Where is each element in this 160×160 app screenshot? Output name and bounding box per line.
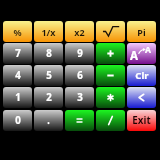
button[interactable]: 8 — [34, 43, 63, 64]
button[interactable]: backspace — [127, 87, 156, 108]
button[interactable]: 0 — [3, 110, 32, 131]
button[interactable]: change font size — [127, 43, 156, 64]
button[interactable]: 1/x — [34, 21, 63, 42]
button[interactable]: 7 — [3, 43, 32, 64]
staticText: Pi — [137, 26, 146, 38]
staticText: A — [145, 44, 151, 56]
staticText: Clr — [135, 69, 149, 82]
button[interactable]: equals — [65, 110, 94, 131]
staticText: 9 — [77, 47, 83, 60]
button[interactable]: multiply — [96, 87, 125, 108]
staticText: 8 — [46, 47, 52, 60]
staticText: 0 — [15, 114, 21, 127]
button[interactable]: % — [3, 21, 32, 42]
button[interactable]: 2 — [34, 87, 63, 108]
button[interactable]: Exit — [127, 110, 156, 131]
button[interactable]: Clr — [127, 65, 156, 86]
button[interactable]: 3 — [65, 87, 94, 108]
button[interactable]: minus — [96, 65, 125, 86]
staticText: % — [13, 26, 22, 38]
staticText: 2 — [46, 91, 52, 104]
staticText: 7 — [15, 47, 21, 60]
staticText: 4 — [15, 69, 21, 82]
staticText: 6 — [77, 69, 83, 82]
staticText: A — [130, 48, 138, 64]
button[interactable]: 5 — [34, 65, 63, 86]
button[interactable]: 1 — [3, 87, 32, 108]
staticText: 1/x — [41, 26, 56, 38]
staticText: x2 — [74, 26, 85, 38]
staticText: Exit — [132, 114, 151, 127]
staticText: 1 — [15, 91, 21, 104]
button[interactable]: divide — [96, 110, 125, 131]
button[interactable]: 4 — [3, 65, 32, 86]
button[interactable]: 6 — [65, 65, 94, 86]
button[interactable]: plus — [96, 43, 125, 64]
button[interactable]: x2 — [65, 21, 94, 42]
button[interactable]: decimal point — [34, 110, 63, 131]
button[interactable]: square root — [96, 21, 125, 42]
button[interactable]: 9 — [65, 43, 94, 64]
button[interactable]: Pi — [127, 21, 156, 42]
staticText: 5 — [46, 69, 52, 82]
staticText: 3 — [77, 91, 83, 104]
